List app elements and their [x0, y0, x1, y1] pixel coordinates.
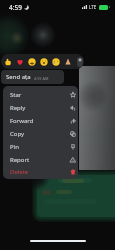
staticText: Pin — [10, 143, 19, 151]
button[interactable]: Copy — [3, 127, 78, 140]
button[interactable]: Star — [3, 88, 78, 101]
staticText: Report — [10, 156, 30, 164]
staticText: LTE — [89, 4, 97, 10]
button[interactable]: React 2 — [27, 57, 37, 67]
button[interactable]: React 5 — [63, 57, 73, 67]
button[interactable]: React 0 — [3, 57, 13, 67]
button[interactable]: Pin — [3, 140, 78, 153]
button[interactable]: Reply — [3, 101, 78, 114]
staticText: Delete — [10, 168, 29, 176]
staticText: Copy — [10, 130, 25, 138]
button[interactable]: React 1 — [15, 57, 25, 67]
staticText: Forward — [10, 117, 34, 125]
button[interactable]: React 3 — [39, 57, 49, 67]
staticText: Send ața — [6, 73, 31, 81]
staticText: Star — [10, 91, 22, 99]
button[interactable]: More reactions — [77, 57, 83, 67]
staticText: 4:59 — [9, 3, 22, 12]
button[interactable]: Report — [3, 153, 78, 166]
button[interactable]: Send ața — [1, 70, 64, 84]
button[interactable]: Delete — [3, 166, 78, 177]
button[interactable]: React 4 — [51, 57, 61, 67]
button[interactable]: Forward — [3, 114, 78, 127]
staticText: Reply — [10, 104, 26, 112]
staticText: 4:59 AM — [34, 76, 49, 81]
